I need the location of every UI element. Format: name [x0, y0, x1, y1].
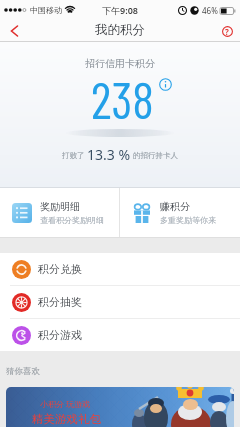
staticText: 中国移动 — [30, 5, 62, 15]
staticText: 查看积分奖励明细 — [40, 215, 104, 225]
staticText: 多重奖励等你来 — [160, 215, 216, 225]
staticText: 招行信用卡积分 — [85, 57, 155, 70]
staticText: 积分游戏 — [38, 328, 82, 342]
staticText: 积分兑换 — [38, 262, 82, 276]
staticText: 46% — [202, 5, 218, 16]
staticText: 的招行持卡人 — [131, 150, 178, 160]
button[interactable]: 奖励明细 — [0, 188, 119, 237]
staticText: 精美游戏礼包 — [32, 412, 101, 426]
staticText: 小积分 玩游戏 — [40, 398, 91, 409]
button[interactable]: 积分兑换 — [0, 253, 240, 285]
staticText: ? — [225, 26, 229, 37]
staticText: 猜你喜欢 — [6, 366, 40, 377]
button[interactable]: 积分抽奖 — [0, 286, 240, 318]
staticText: 赚积分 — [160, 200, 190, 213]
staticText: 下午9:08 — [102, 4, 138, 16]
staticText: 238 — [91, 68, 154, 129]
button[interactable]: 积分游戏 — [0, 319, 240, 351]
button[interactable] — [0, 20, 28, 42]
button[interactable]: 小积分 玩游戏 — [6, 387, 234, 427]
staticText: 13.3 % — [87, 145, 131, 164]
button[interactable]: ? — [214, 20, 240, 42]
staticText: 奖励明细 — [40, 200, 80, 213]
staticText: 积分抽奖 — [38, 295, 82, 309]
button[interactable] — [159, 78, 172, 91]
button[interactable]: 赚积分 — [120, 188, 240, 237]
staticText: 我的积分 — [95, 22, 145, 38]
staticText: 打败了 — [62, 150, 87, 160]
